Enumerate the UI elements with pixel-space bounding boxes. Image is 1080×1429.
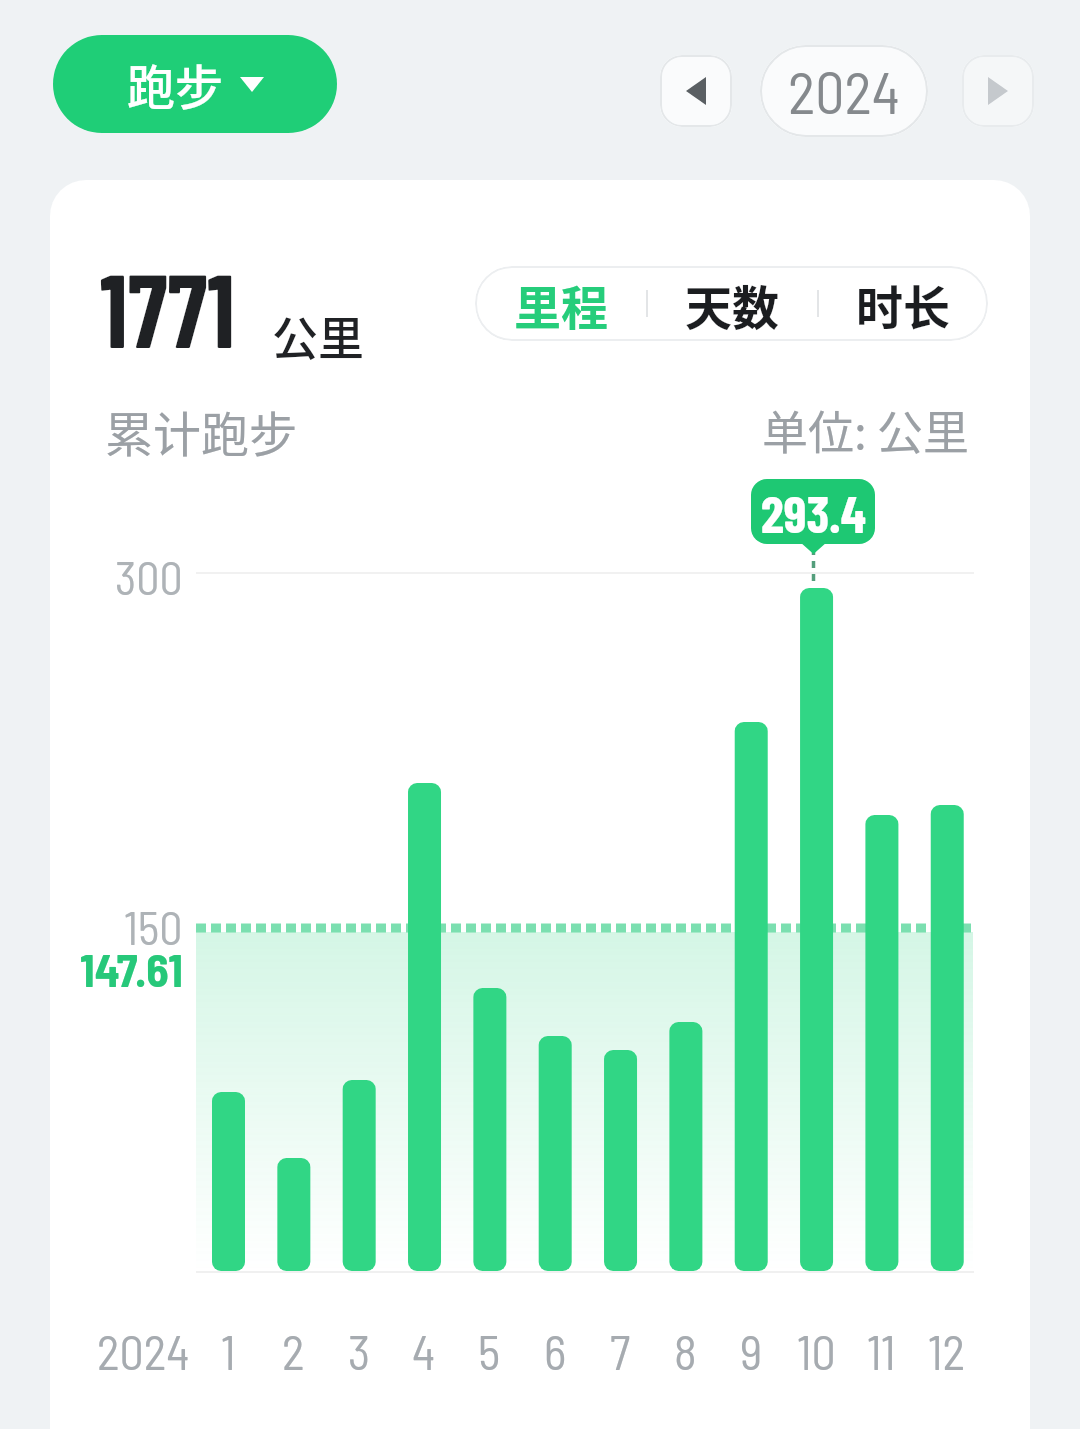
staticText: 天数: [685, 270, 779, 338]
staticText: 12: [928, 1322, 966, 1380]
staticText: 6: [544, 1322, 567, 1380]
staticText: 300: [115, 549, 183, 604]
staticText: 时长: [856, 270, 950, 338]
staticText: 1771: [100, 244, 236, 369]
staticText: 8: [674, 1322, 697, 1380]
staticText: 11: [867, 1322, 896, 1380]
staticText: 5: [478, 1322, 501, 1380]
staticText: 单位: 公里: [762, 396, 970, 463]
staticText: 2024: [788, 56, 900, 126]
button[interactable]: 时长: [817, 266, 988, 341]
staticText: 150: [124, 899, 183, 954]
staticText: 147.61: [80, 941, 183, 996]
staticText: 293.4: [761, 481, 866, 543]
button[interactable]: 天数: [646, 266, 817, 341]
staticText: 3: [348, 1322, 371, 1380]
staticText: 7: [610, 1322, 631, 1380]
staticText: 里程: [514, 270, 608, 338]
button[interactable]: 跑步: [53, 35, 337, 133]
staticText: 2: [282, 1322, 305, 1380]
staticText: 9: [740, 1322, 763, 1380]
button[interactable]: [660, 55, 732, 127]
button[interactable]: 2024: [760, 45, 928, 137]
staticText: 4: [412, 1322, 436, 1380]
button[interactable]: [962, 55, 1034, 127]
staticText: 1: [221, 1322, 236, 1380]
staticText: 10: [797, 1322, 836, 1380]
staticText: 公里: [272, 302, 364, 369]
staticText: 2024: [97, 1322, 190, 1380]
staticText: 累计跑步: [105, 396, 298, 466]
staticText: 跑步: [127, 49, 224, 119]
button[interactable]: 里程: [475, 266, 646, 341]
